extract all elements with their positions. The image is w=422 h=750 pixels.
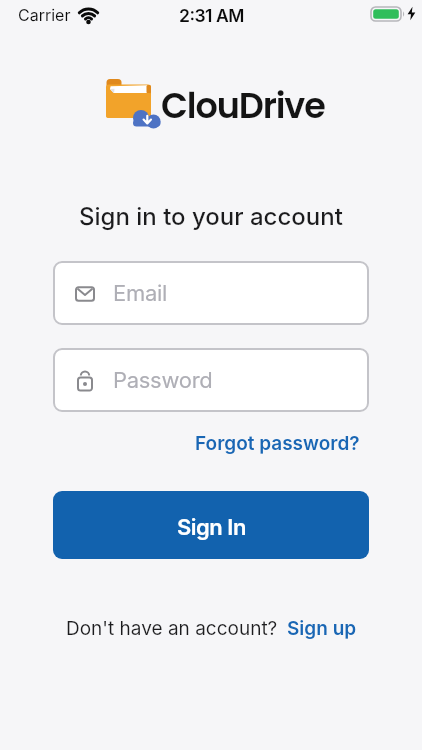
- staticText: Sign in to your account: [79, 202, 343, 231]
- staticText: Email: [113, 280, 168, 307]
- staticText: Don't have an account?: [66, 617, 278, 640]
- staticText: ClouDrive: [161, 81, 325, 130]
- staticText: Sign up: [287, 617, 357, 640]
- staticText: 2:31 AM: [179, 5, 244, 26]
- staticText: Carrier: [18, 5, 71, 24]
- staticText: Sign In: [177, 514, 246, 541]
- staticText: Password: [113, 367, 213, 394]
- staticText: Forgot password?: [195, 432, 360, 455]
